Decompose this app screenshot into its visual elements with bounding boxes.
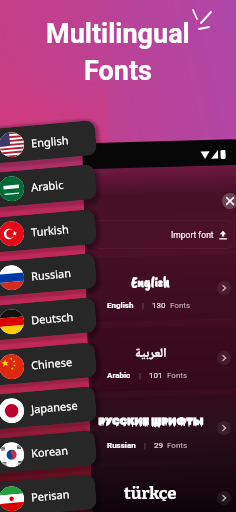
button[interactable]: العربية (88, 326, 236, 390)
button[interactable]: Korean (0, 430, 97, 475)
staticText: Fonts (170, 301, 191, 310)
staticText: Russian (107, 441, 136, 450)
button[interactable]: Open English fonts (217, 281, 231, 295)
staticText: Russian (30, 265, 72, 283)
staticText: Deutsch (30, 309, 74, 327)
staticText: Chinese (30, 354, 73, 372)
staticText: English (30, 132, 70, 150)
button[interactable]: Open Arabic fonts (217, 351, 231, 365)
button[interactable]: Arabic (0, 164, 97, 209)
button[interactable]: English (0, 120, 97, 165)
button[interactable]: Close (222, 193, 236, 209)
staticText: РУССКИЕ ШРИФТЫ (98, 416, 204, 428)
staticText: türkçe (124, 483, 177, 501)
button[interactable]: Russian (0, 253, 97, 298)
staticText: Turkish (30, 221, 70, 239)
staticText: Fonts (167, 371, 188, 380)
staticText: Import font (171, 230, 214, 240)
button[interactable]: Open Turkish fonts (217, 491, 231, 505)
button[interactable]: Deutsch (0, 297, 97, 342)
button[interactable]: Japanese (0, 386, 97, 431)
staticText: | (144, 441, 146, 450)
staticText: Arabic (30, 177, 65, 194)
staticText: 29 (154, 441, 163, 450)
button[interactable]: РУССКИЕ ШРИФТЫ (88, 396, 236, 460)
staticText: Multilingual (46, 18, 190, 50)
staticText: | (139, 371, 141, 380)
staticText: English (131, 273, 170, 291)
staticText: Japanese (30, 397, 78, 416)
button[interactable]: Import font (92, 220, 234, 249)
staticText: | (142, 301, 144, 310)
staticText: العربية (135, 343, 167, 361)
button[interactable]: Turkish (0, 209, 97, 254)
button[interactable]: Open Russian fonts (217, 421, 231, 435)
button[interactable]: türkçe (88, 466, 236, 512)
staticText: English (107, 301, 134, 310)
staticText: Fonts (167, 441, 188, 450)
staticText: Arabic (107, 371, 131, 380)
button[interactable]: Chinese (0, 342, 97, 387)
staticText: 130 (152, 301, 166, 310)
staticText: 101 (149, 371, 163, 380)
staticText: Korean (30, 442, 69, 460)
staticText: Perisan (30, 486, 71, 504)
button[interactable]: Perisan (0, 474, 97, 512)
button[interactable]: English (88, 256, 236, 320)
staticText: Fonts (84, 55, 152, 87)
